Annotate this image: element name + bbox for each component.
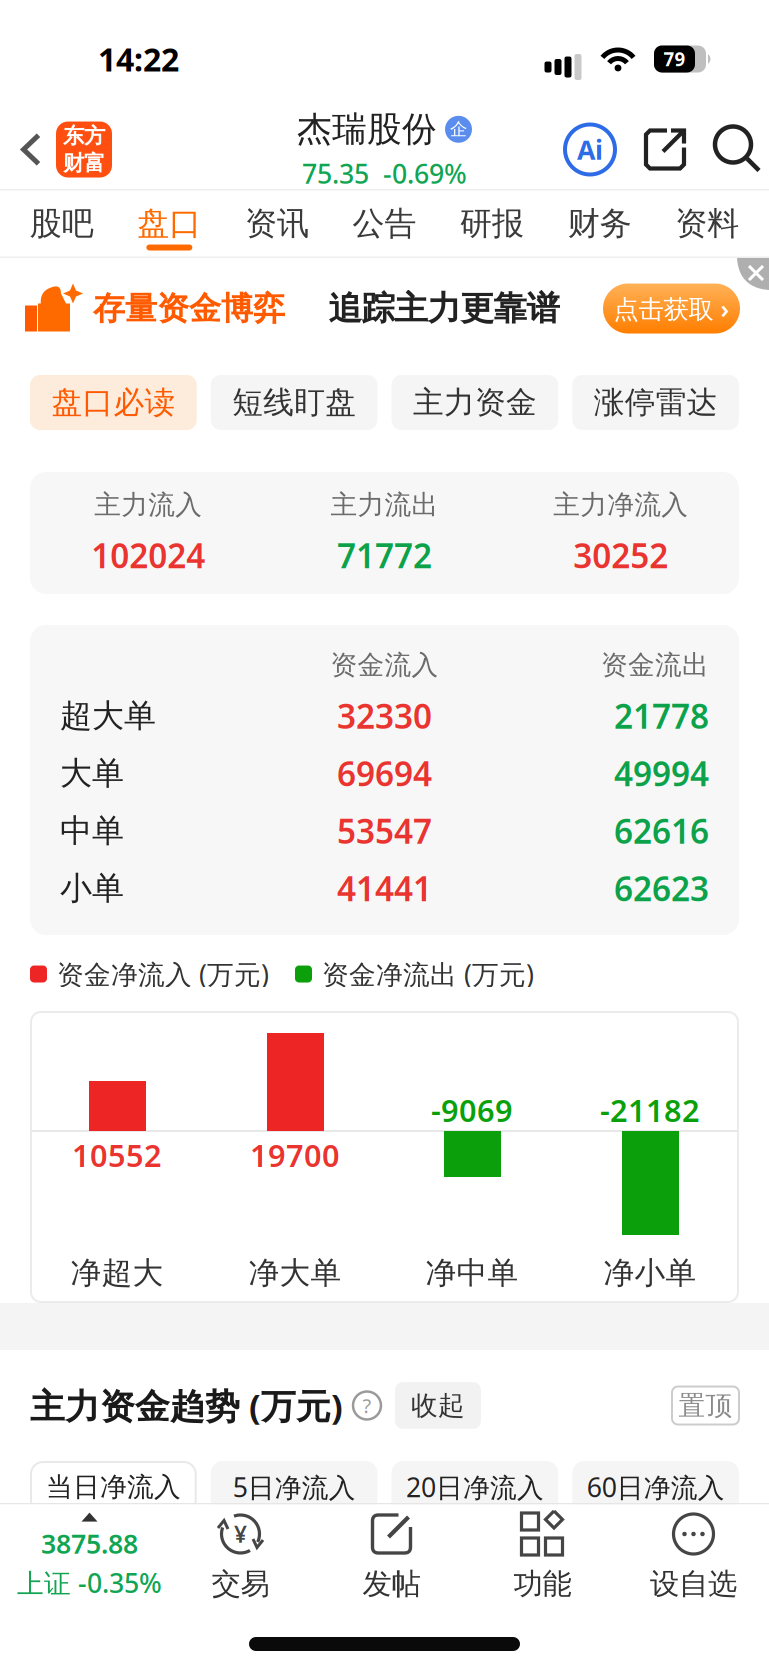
staticText: 主力流入 [94, 488, 202, 521]
staticText: 股吧 [30, 204, 94, 243]
button[interactable]: 关闭 [737, 258, 769, 290]
staticText: 60日净流入 [587, 1469, 725, 1505]
staticText: 当日净流入 [46, 1471, 181, 1503]
staticText: 收起 [411, 1389, 465, 1422]
staticText: 大单 [60, 754, 124, 793]
button[interactable]: 设自选 [618, 1511, 769, 1602]
staticText: 发帖 [362, 1566, 420, 1602]
staticText: 存量资金博弈 [93, 289, 285, 328]
button[interactable]: 点击获取 [603, 283, 769, 333]
staticText: 中单 [60, 811, 124, 850]
staticText: 资讯 [245, 204, 309, 243]
button[interactable]: 收起 [395, 1382, 481, 1429]
button[interactable]: 发帖 [316, 1511, 467, 1602]
staticText: 主力流出 [330, 488, 438, 521]
button[interactable]: 返回 [0, 132, 48, 166]
staticText: Ai [577, 132, 603, 167]
button[interactable]: 行情 [14, 1513, 165, 1600]
staticText: 32330 [337, 694, 432, 738]
staticText: 财富 [63, 150, 105, 176]
button[interactable]: 盘口 [116, 190, 223, 256]
button[interactable]: 置顶 [672, 1386, 739, 1424]
button[interactable]: 研报 [438, 190, 546, 256]
button[interactable]: 5日净流入 [211, 1461, 378, 1513]
staticText: 净小单 [603, 1254, 696, 1292]
staticText: 东方 [63, 123, 105, 149]
staticText: 研报 [460, 204, 524, 243]
button[interactable]: Ai助手 [565, 124, 615, 174]
staticText: 5日净流入 [233, 1469, 356, 1505]
button[interactable]: 盘口必读 [30, 375, 197, 430]
button[interactable]: 分享 [641, 125, 689, 173]
staticText: 主力资金 [413, 384, 537, 421]
staticText: 小单 [60, 869, 124, 908]
staticText: 资金净流出 (万元) [322, 956, 534, 992]
staticText: 19700 [250, 1135, 340, 1175]
staticText: 盘口必读 [51, 384, 175, 421]
staticText: 主力净流入 [553, 488, 688, 521]
button[interactable]: 帮助 [343, 1391, 381, 1419]
staticText: 21778 [614, 694, 709, 738]
staticText: 资金流出 [601, 649, 709, 681]
staticText: -9069 [431, 1090, 513, 1130]
button[interactable]: 涨停雷达 [572, 375, 739, 430]
button[interactable]: 东方财富 [48, 121, 112, 177]
staticText: 净超大 [70, 1254, 163, 1292]
staticText: 企 [450, 119, 467, 140]
staticText: 资料 [675, 204, 739, 243]
staticText: 3875.88 [41, 1526, 138, 1561]
staticText: 62616 [614, 809, 709, 853]
button[interactable]: 20日净流入 [391, 1461, 558, 1513]
staticText: 超大单 [60, 696, 156, 735]
staticText: -21182 [600, 1090, 700, 1130]
button[interactable]: 搜索 [715, 126, 761, 172]
staticText: 置顶 [678, 1389, 732, 1422]
button[interactable]: 股吧 [8, 190, 116, 256]
staticText: 79 [663, 47, 685, 71]
staticText: 资金流入 [330, 649, 438, 681]
staticText: 公告 [352, 204, 416, 243]
staticText: 14:22 [98, 38, 179, 80]
staticText: ? [362, 1392, 371, 1419]
button[interactable]: 资讯 [223, 190, 331, 256]
staticText: 20日净流入 [406, 1469, 544, 1505]
staticText: 点击获取 › [613, 292, 729, 325]
staticText: 短线盯盘 [232, 384, 356, 421]
button[interactable]: 60日净流入 [572, 1461, 739, 1513]
staticText: 102024 [91, 533, 205, 577]
staticText: 功能 [513, 1566, 571, 1602]
staticText: 净中单 [425, 1254, 518, 1292]
staticText: 盘口 [137, 204, 201, 243]
staticText: 69694 [337, 751, 432, 795]
staticText: 71772 [337, 533, 432, 577]
staticText: 75.35 -0.69% [302, 156, 467, 191]
button[interactable]: 财务 [546, 190, 653, 256]
staticText: 净大单 [248, 1254, 341, 1292]
staticText: 62623 [614, 866, 709, 910]
button[interactable]: 功能 [467, 1511, 618, 1602]
button[interactable]: 短线盯盘 [211, 375, 378, 430]
staticText: ¥ [234, 1519, 247, 1549]
staticText: 追踪主力更靠谱 [328, 288, 559, 329]
button[interactable]: ¥ [165, 1511, 316, 1602]
button[interactable]: 公告 [331, 190, 438, 256]
staticText: 30252 [573, 533, 668, 577]
button[interactable]: 存量资金博弈 [0, 283, 285, 333]
staticText: 交易 [211, 1566, 269, 1602]
staticText: 设自选 [650, 1566, 737, 1602]
staticText: 10552 [72, 1135, 162, 1175]
button[interactable]: 当日净流入 [30, 1461, 197, 1513]
staticText: 杰瑞股份 [297, 108, 437, 151]
staticText: 41441 [337, 866, 432, 910]
staticText: 53547 [337, 809, 432, 853]
staticText: 主力资金趋势 (万元) [30, 1382, 343, 1428]
staticText: 涨停雷达 [594, 384, 718, 421]
button[interactable]: 主力资金 [391, 375, 558, 430]
staticText: 上证 -0.35% [17, 1565, 162, 1600]
staticText: 49994 [614, 751, 709, 795]
staticText: 财务 [568, 204, 632, 243]
button[interactable]: 资料 [653, 190, 761, 256]
staticText: 资金净流入 (万元) [57, 956, 269, 992]
